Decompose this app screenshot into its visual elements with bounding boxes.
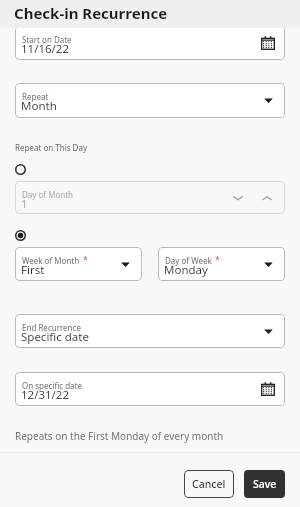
button[interactable]: On specific date [15, 372, 285, 406]
staticText: Specific date [21, 329, 89, 345]
staticText: Week of Month [22, 255, 80, 266]
staticText: On specific date [22, 380, 82, 391]
button[interactable]: Save [244, 470, 285, 498]
staticText: Start on Date [22, 34, 72, 45]
staticText: Monday [164, 262, 208, 278]
button[interactable]: Selected option [10, 225, 30, 245]
other: Pick date [261, 382, 275, 396]
button[interactable]: Option [10, 159, 30, 179]
button[interactable]: Start on Date [15, 26, 285, 60]
staticText: 11/16/22 [21, 41, 70, 57]
other: Open dropdown [264, 327, 273, 336]
staticText: Cancel [192, 477, 226, 491]
staticText: * [83, 253, 88, 265]
other: Open dropdown [264, 260, 273, 269]
staticText: Check-in Recurrence [14, 3, 168, 23]
other: Open dropdown [121, 260, 130, 269]
staticText: Day of Month [22, 189, 74, 200]
staticText: Repeats on the First Monday of every mon… [15, 429, 224, 443]
button[interactable]: Repeat [15, 83, 285, 118]
button[interactable]: Week of Month [15, 247, 142, 281]
staticText: Save [253, 477, 277, 491]
staticText: Repeat [22, 91, 49, 102]
staticText: 12/31/22 [21, 387, 70, 403]
staticText: * [215, 253, 220, 265]
button[interactable]: Day of Month [15, 181, 285, 214]
staticText: End Recurrence [22, 322, 81, 333]
button[interactable]: Day of Week [158, 247, 285, 281]
staticText: First [21, 262, 45, 278]
button[interactable]: Increase day [260, 191, 274, 205]
staticText: Day of Week [165, 255, 212, 266]
button[interactable]: End Recurrence [15, 314, 285, 348]
button[interactable]: Cancel [184, 470, 234, 498]
button[interactable]: Decrease day [231, 191, 245, 205]
staticText: Repeat on This Day [15, 142, 88, 153]
other: Pick date [261, 36, 275, 50]
staticText: 1 [21, 196, 28, 212]
other: Open dropdown [264, 96, 273, 105]
staticText: Month [21, 98, 57, 114]
